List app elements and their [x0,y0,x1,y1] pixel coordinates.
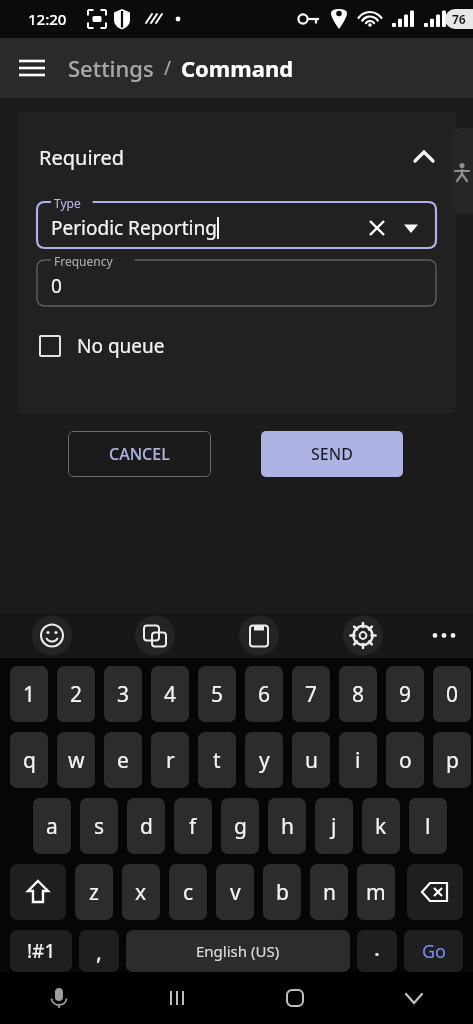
button[interactable]: j [315,798,353,854]
button[interactable]: 9 [386,666,424,722]
staticText: English (US) [196,941,280,961]
staticText: o [399,746,412,775]
staticText: d [140,812,153,841]
button[interactable]: z [75,864,113,920]
button[interactable]: Open dropdown [396,210,426,240]
button[interactable]: 4 [151,666,189,722]
staticText: Periodic Reporting [51,215,217,241]
button[interactable]: Emoji [32,616,72,656]
button[interactable]: More options [424,616,464,656]
staticText: w [68,746,85,775]
staticText: 4 [164,680,177,709]
button[interactable]: Clear [362,210,392,240]
button[interactable]: 3 [104,666,142,722]
button[interactable]: b [263,864,301,920]
button[interactable]: Voice input [0,972,118,1024]
button[interactable]: r [151,732,189,788]
staticText: f [189,812,197,841]
staticText: 0 [446,680,459,709]
staticText: Frequency [54,253,113,269]
button[interactable]: Keyboard settings [344,616,384,656]
button[interactable]: !#1 [10,930,72,972]
button[interactable]: No queue [39,324,456,368]
staticText: m [366,878,386,907]
button[interactable]: SEND [261,431,403,477]
button[interactable]: Translate [136,616,176,656]
button[interactable]: n [310,864,348,920]
staticText: l [425,812,431,841]
staticText: 5 [211,680,224,709]
staticText: 1 [23,680,36,709]
staticText: q [23,746,36,775]
staticText: 3 [117,680,130,709]
button[interactable]: d [127,798,165,854]
button[interactable]: Home [236,972,354,1024]
button[interactable]: Backspace [407,864,463,920]
button[interactable]: 8 [339,666,377,722]
staticText: p [446,746,459,775]
button[interactable]: Go [404,930,463,972]
button[interactable]: Required [17,112,456,202]
button[interactable]: k [362,798,400,854]
staticText: Settings [68,53,154,83]
button[interactable]: Menu [10,46,54,90]
button[interactable]: l [409,798,447,854]
staticText: z [89,878,99,907]
button[interactable]: Shift [10,864,66,920]
button[interactable]: 1 [10,666,48,722]
button[interactable]: Clipboard [240,616,280,656]
staticText: i [355,746,361,775]
button[interactable]: 0 [433,666,471,722]
staticText: Command [181,53,294,83]
button[interactable]: x [122,864,160,920]
staticText: 0 [51,273,62,299]
staticText: Required [39,144,410,171]
button[interactable]: c [169,864,207,920]
staticText: 2 [70,680,83,709]
button[interactable]: CANCEL [68,431,211,477]
button[interactable]: 7 [292,666,330,722]
staticText: j [331,812,337,841]
button[interactable]: w [57,732,95,788]
button[interactable]: , [79,930,119,972]
button[interactable]: English (US) [126,930,350,972]
staticText: / [154,55,181,81]
button[interactable]: e [104,732,142,788]
staticText: a [46,812,58,841]
button[interactable]: t [198,732,236,788]
staticText: !#1 [27,938,56,964]
button[interactable]: f [174,798,212,854]
button[interactable]: 6 [245,666,283,722]
staticText: v [230,878,241,907]
button[interactable]: 2 [57,666,95,722]
staticText: SEND [311,443,353,465]
button[interactable]: 5 [198,666,236,722]
staticText: k [375,812,387,841]
staticText: 7 [305,680,318,709]
button[interactable]: Accessibility [451,128,473,214]
button[interactable]: m [357,864,395,920]
button[interactable]: s [80,798,118,854]
button[interactable]: o [386,732,424,788]
button[interactable]: Hide keyboard [354,972,473,1024]
button[interactable]: . [357,930,397,972]
button[interactable]: p [433,732,471,788]
staticText: 12:20 [28,9,67,29]
staticText: Go [422,939,446,964]
button[interactable]: i [339,732,377,788]
staticText: 9 [399,680,412,709]
staticText: h [281,812,294,841]
staticText: , [96,936,102,966]
button[interactable]: h [268,798,306,854]
staticText: e [117,746,129,775]
button[interactable]: y [245,732,283,788]
button[interactable]: g [221,798,259,854]
staticText: c [183,878,194,907]
button[interactable]: a [33,798,71,854]
button[interactable]: Recent apps [118,972,236,1024]
staticText: u [305,746,318,775]
button[interactable]: q [10,732,48,788]
staticText: 8 [352,680,365,709]
button[interactable]: u [292,732,330,788]
button[interactable]: v [216,864,254,920]
